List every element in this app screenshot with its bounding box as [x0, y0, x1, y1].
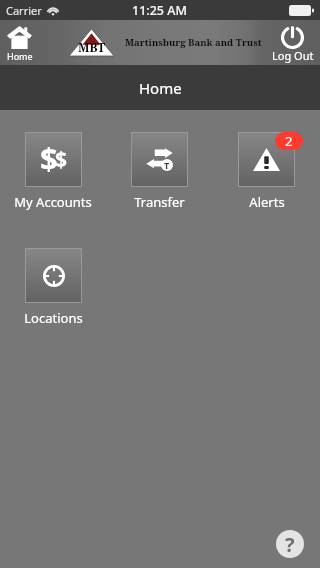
staticText: Home	[139, 78, 182, 98]
staticText: $	[40, 137, 58, 177]
button[interactable]: 2	[213, 132, 320, 211]
staticText: MBT	[78, 39, 106, 55]
staticText: Alerts	[249, 193, 285, 211]
button[interactable]: Home	[0, 20, 39, 65]
button[interactable]: $	[0, 132, 106, 211]
staticText: My Accounts	[14, 193, 92, 211]
staticText: Transfer	[134, 193, 185, 211]
staticText: Home	[7, 50, 33, 62]
staticText: Carrier	[6, 3, 42, 18]
staticText: Log Out	[272, 48, 314, 63]
button[interactable]: Help	[276, 530, 304, 558]
button[interactable]: Locations	[0, 248, 106, 327]
staticText: 2	[285, 132, 293, 150]
staticText: Martinsburg Bank and Trust	[125, 36, 262, 49]
staticText: ?	[285, 531, 295, 558]
staticText: Locations	[24, 309, 83, 327]
button[interactable]: T	[106, 132, 213, 211]
staticText: 11:25 AM	[132, 2, 187, 19]
staticText: T	[164, 159, 170, 171]
button[interactable]: Log Out	[265, 20, 320, 65]
staticText: $	[55, 145, 68, 174]
